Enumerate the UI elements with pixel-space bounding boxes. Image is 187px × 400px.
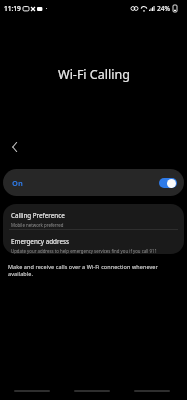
staticText: Mobile network preferred: [11, 222, 64, 228]
button[interactable]: Calling Preference: [3, 204, 184, 229]
staticText: 24%: [157, 4, 171, 13]
button[interactable]: Back: [1, 134, 27, 160]
button[interactable]: Back: [123, 382, 181, 400]
button[interactable]: Recents: [3, 382, 61, 400]
staticText: On: [12, 178, 23, 188]
staticText: Update your address to help emergency se…: [11, 248, 158, 254]
staticText: Wi-Fi Calling: [58, 66, 130, 83]
staticText: 11:19: [4, 4, 21, 13]
button[interactable]: Emergency address: [3, 230, 184, 254]
staticText: Make and receive calls over a Wi-Fi conn…: [8, 263, 175, 277]
staticText: Calling Preference: [11, 211, 65, 220]
staticText: Emergency address: [11, 237, 70, 246]
button[interactable]: On: [3, 169, 184, 196]
button[interactable]: Home: [63, 382, 121, 400]
